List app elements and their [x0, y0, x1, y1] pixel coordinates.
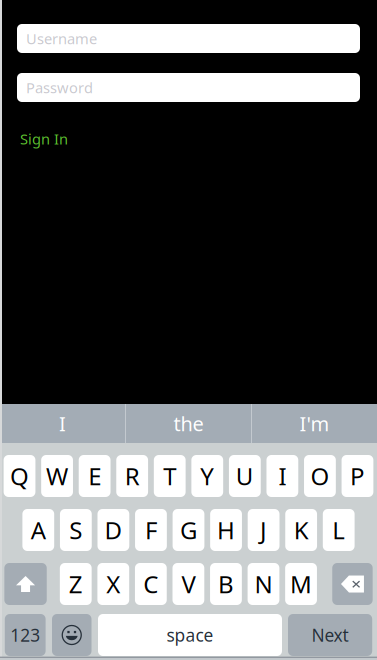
button[interactable]: space	[98, 614, 282, 656]
staticText: C	[143, 568, 158, 600]
button[interactable]: F	[135, 509, 167, 551]
button[interactable]: Shift	[4, 563, 47, 605]
button[interactable]: E	[79, 455, 110, 497]
button[interactable]: I	[266, 455, 298, 497]
staticText: A	[31, 514, 46, 546]
staticText: Z	[69, 568, 83, 600]
button[interactable]: R	[116, 455, 148, 497]
staticText: G	[180, 514, 197, 546]
staticText: Next	[312, 623, 349, 646]
staticText: U	[236, 460, 254, 492]
button[interactable]: W	[41, 455, 73, 497]
button[interactable]: V	[172, 563, 204, 605]
staticText: M	[290, 568, 312, 600]
button[interactable]: O	[304, 455, 336, 497]
staticText: T	[163, 460, 176, 492]
staticText: Y	[200, 460, 214, 492]
staticText: S	[69, 514, 82, 546]
staticText: Username	[26, 29, 97, 48]
button[interactable]: G	[173, 509, 204, 551]
staticText: Password	[26, 78, 93, 97]
staticText: I	[59, 410, 66, 437]
button[interactable]: T	[154, 455, 186, 497]
button[interactable]: K	[285, 509, 317, 551]
staticText: R	[125, 460, 140, 492]
staticText: Q	[10, 460, 29, 492]
staticText: F	[145, 514, 157, 546]
staticText: the	[173, 410, 203, 437]
staticText: J	[260, 514, 267, 546]
button[interactable]: S	[60, 509, 92, 551]
staticText: L	[332, 514, 345, 546]
button[interactable]: A	[22, 509, 54, 551]
button[interactable]: U	[229, 455, 261, 497]
button[interactable]: H	[210, 509, 242, 551]
staticText: N	[254, 568, 272, 600]
button[interactable]: Y	[191, 455, 223, 497]
button[interactable]: I'm	[252, 404, 377, 443]
button[interactable]: B	[210, 563, 242, 605]
staticText: Sign In	[20, 129, 68, 148]
staticText: space	[166, 623, 213, 646]
staticText: I	[278, 460, 286, 492]
staticText: 123	[10, 623, 40, 646]
button[interactable]: Q	[4, 455, 35, 497]
button[interactable]: I	[0, 404, 125, 443]
button[interactable]: Emoji	[52, 614, 91, 656]
button[interactable]: X	[97, 563, 129, 605]
button[interactable]: N	[248, 563, 279, 605]
button[interactable]: 123	[5, 614, 46, 656]
button[interactable]: the	[126, 404, 251, 443]
button[interactable]: J	[248, 509, 279, 551]
staticText: B	[218, 568, 234, 600]
staticText: K	[294, 514, 309, 546]
button[interactable]: Sign In	[0, 124, 377, 153]
staticText: O	[310, 460, 329, 492]
button[interactable]: P	[342, 455, 373, 497]
button[interactable]: Delete	[332, 563, 373, 605]
staticText: E	[88, 460, 101, 492]
button[interactable]: L	[323, 509, 355, 551]
staticText: W	[46, 460, 68, 492]
staticText: X	[106, 568, 120, 600]
button[interactable]: C	[135, 563, 167, 605]
staticText: I'm	[299, 410, 329, 437]
staticText: D	[104, 514, 122, 546]
button[interactable]: D	[97, 509, 129, 551]
button[interactable]: Next	[288, 614, 372, 656]
staticText: P	[350, 460, 365, 492]
staticText: H	[217, 514, 235, 546]
button[interactable]: Z	[60, 563, 92, 605]
button[interactable]: M	[285, 563, 317, 605]
staticText: V	[181, 568, 195, 600]
